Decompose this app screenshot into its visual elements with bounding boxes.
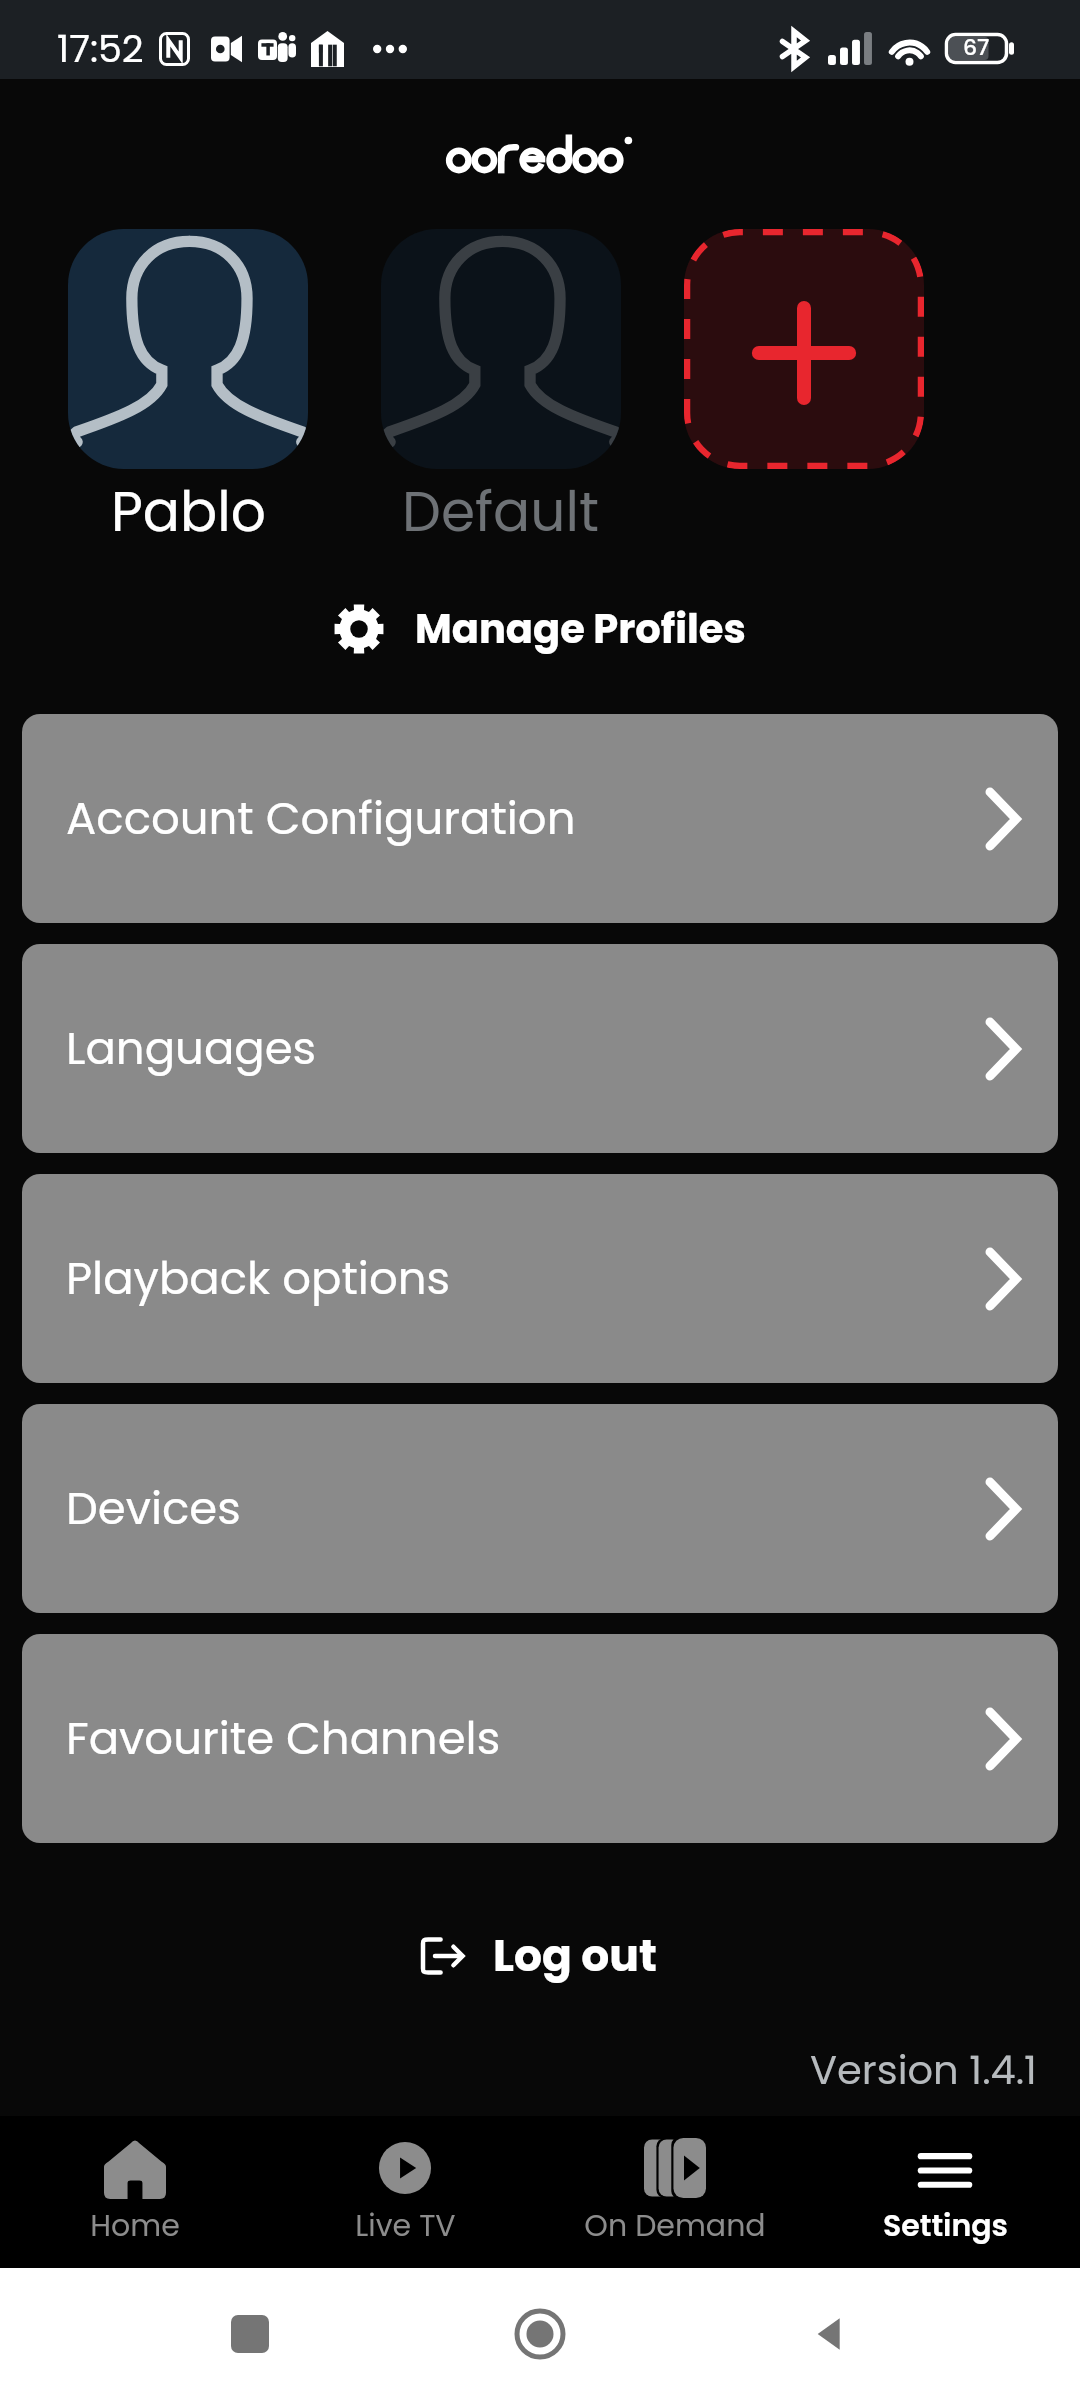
staticText: Pablo <box>111 473 266 550</box>
button[interactable]: Home <box>0 2129 270 2255</box>
button[interactable]: Favourite Channels <box>22 1634 1058 1843</box>
staticText: Account Configuration <box>66 787 576 850</box>
button[interactable]: Settings <box>810 2129 1080 2255</box>
button[interactable]: Languages <box>22 944 1058 1153</box>
other: ooredoo <box>445 131 635 175</box>
staticText: Playback options <box>66 1247 450 1310</box>
button[interactable]: Add profile <box>684 229 924 469</box>
staticText: Devices <box>66 1477 241 1540</box>
button[interactable]: Devices <box>22 1404 1058 1613</box>
button[interactable]: Recents <box>210 2294 290 2374</box>
button[interactable]: On Demand <box>540 2129 810 2255</box>
staticText: 67 <box>963 32 990 63</box>
button[interactable]: Live TV <box>270 2129 540 2255</box>
staticText: Languages <box>66 1017 317 1080</box>
staticText: Live TV <box>355 2205 456 2247</box>
button[interactable]: Log out <box>415 1919 665 1993</box>
button[interactable]: Playback options <box>22 1174 1058 1383</box>
staticText: Favourite Channels <box>66 1707 501 1770</box>
button[interactable]: Back <box>790 2294 870 2374</box>
staticText: Home <box>90 2205 180 2247</box>
staticText: Default <box>402 473 600 550</box>
button[interactable]: Home <box>500 2294 580 2374</box>
staticText: Version 1.4.1 <box>810 2042 1037 2098</box>
button[interactable] <box>68 229 308 469</box>
button[interactable] <box>381 229 621 469</box>
staticText: Settings <box>883 2205 1008 2247</box>
staticText: 17:52 <box>57 22 144 75</box>
button[interactable]: Manage Profiles <box>326 597 754 661</box>
staticText: Log out <box>493 1925 657 1987</box>
button[interactable]: Account Configuration <box>22 714 1058 923</box>
staticText: On Demand <box>584 2205 766 2247</box>
staticText: Manage Profiles <box>415 601 746 657</box>
